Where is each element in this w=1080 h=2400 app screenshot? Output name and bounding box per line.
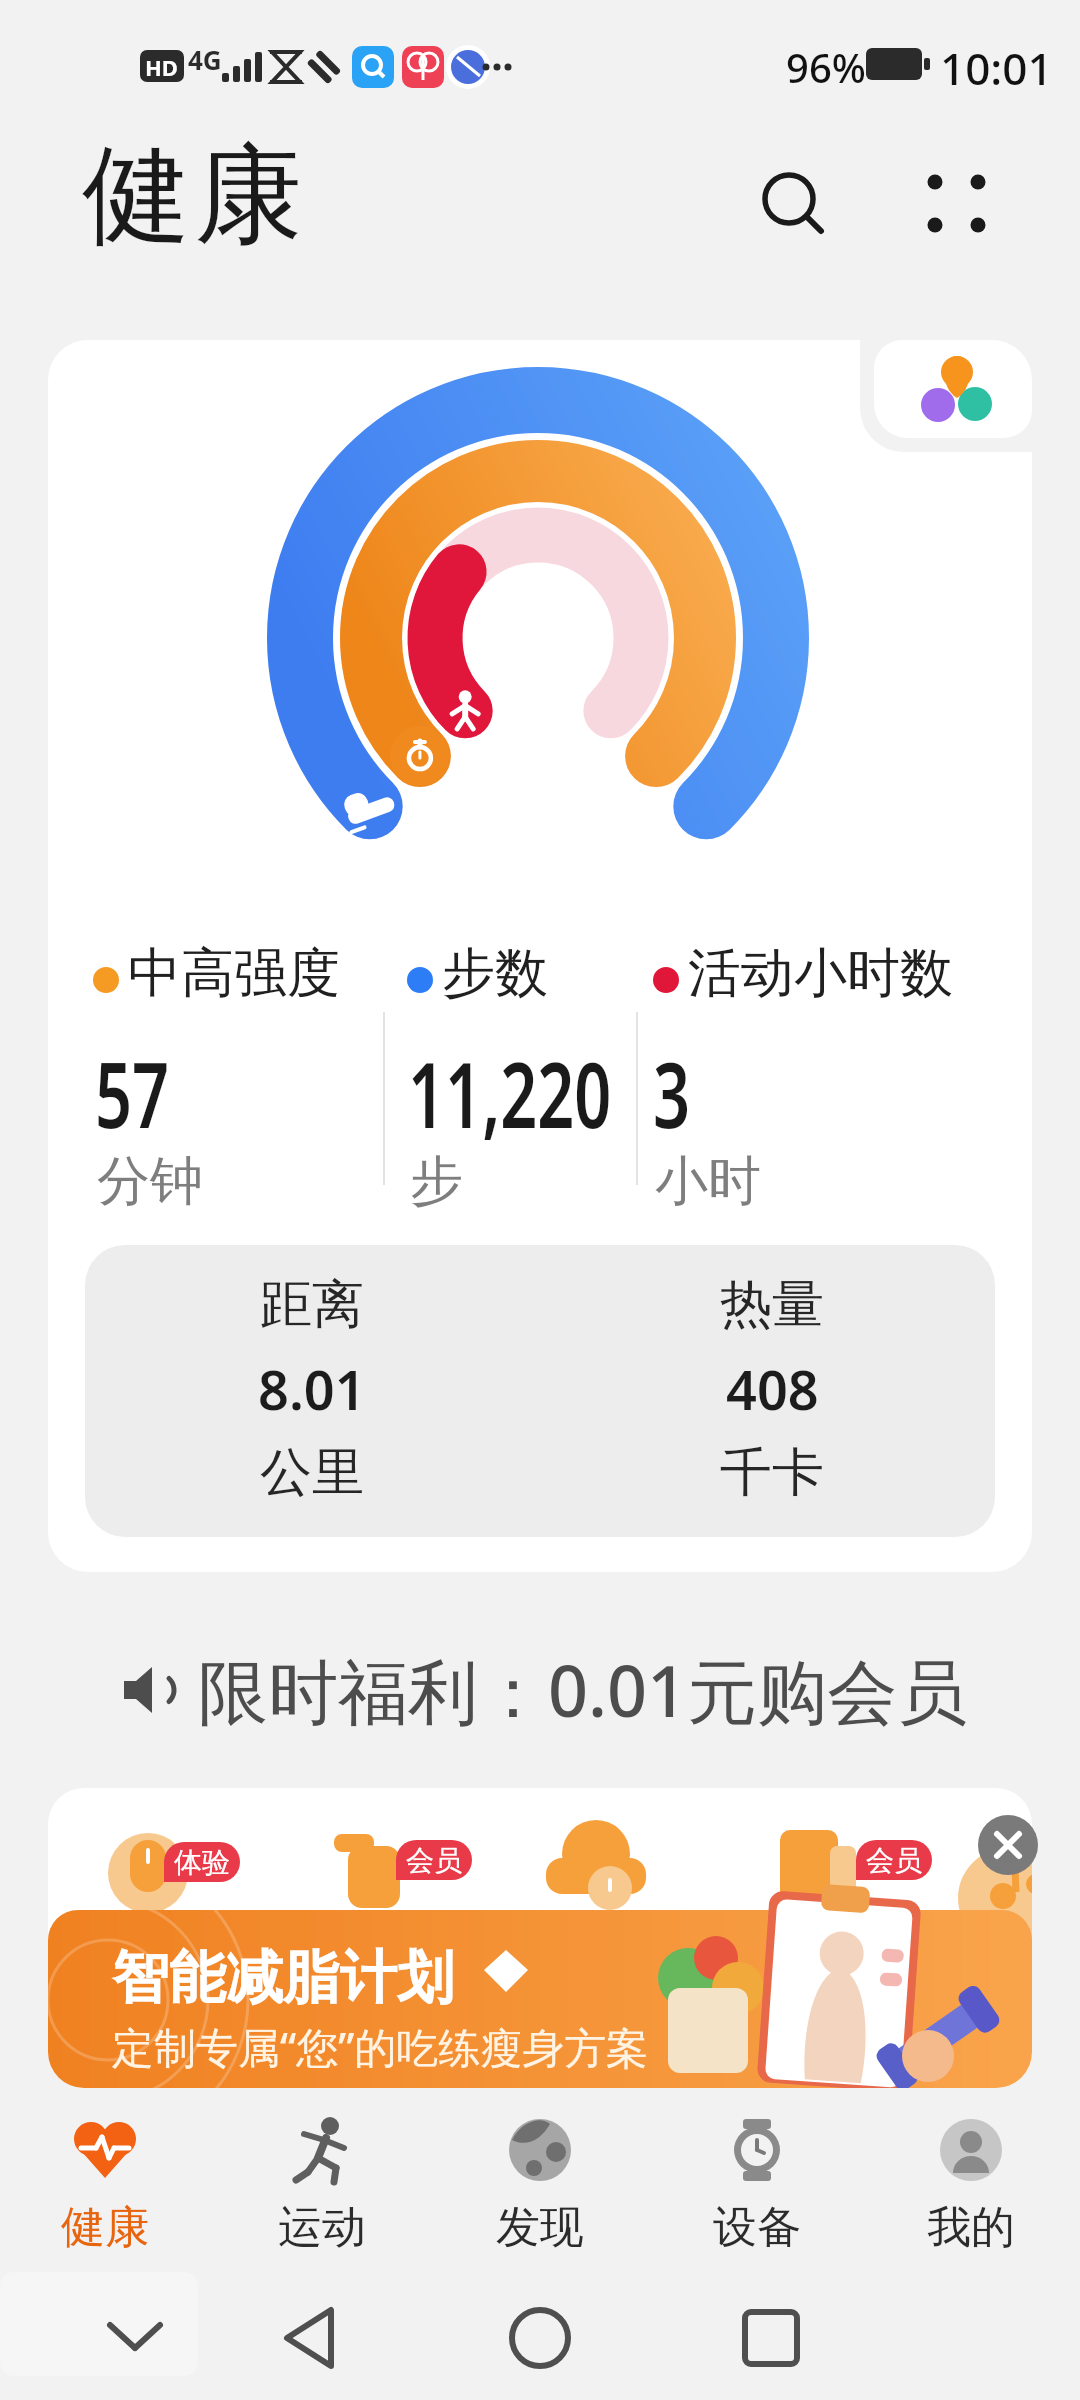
staticText: 体验 (174, 1845, 230, 1880)
staticText: 步 (410, 1148, 463, 1215)
staticText: 96% (786, 40, 866, 94)
staticText: 10:01 (940, 38, 1053, 98)
staticText: 步数 (442, 940, 548, 1007)
staticText: 热量 (720, 1272, 824, 1338)
button[interactable]: 限时福利：0.01元购会员 (110, 1630, 968, 1750)
staticText: 会员 (406, 1843, 462, 1878)
staticText: 小时 (655, 1148, 761, 1215)
staticText: 活动小时数 (688, 940, 953, 1007)
staticText: 57 (95, 1032, 169, 1155)
staticText: 408 (726, 1352, 819, 1426)
staticText: 11,220 (408, 1032, 612, 1155)
staticText: 公里 (260, 1440, 364, 1506)
staticText: 中高强度 (128, 940, 340, 1007)
staticText: 距离 (260, 1272, 364, 1338)
button[interactable] (755, 165, 831, 241)
staticText: 发现 (496, 2200, 584, 2255)
staticText: 我的 (927, 2200, 1015, 2255)
button[interactable] (978, 1815, 1038, 1875)
staticText: 4G (188, 42, 222, 77)
button[interactable]: 体验 (48, 1788, 1032, 2088)
button[interactable] (874, 340, 1032, 438)
button[interactable] (915, 160, 1001, 246)
staticText: 会员 (866, 1843, 922, 1878)
button[interactable]: 我的 (891, 2118, 1051, 2255)
staticText: 3 (653, 1032, 690, 1155)
staticText: 设备 (713, 2200, 801, 2255)
staticText: 分钟 (97, 1148, 203, 1215)
staticText: 健康 (82, 128, 307, 264)
staticText: 千卡 (720, 1440, 824, 1506)
button[interactable]: 健康 (25, 2118, 185, 2255)
button[interactable]: 发现 (460, 2118, 620, 2255)
staticText: 8.01 (258, 1352, 366, 1426)
button[interactable]: 运动 (242, 2118, 402, 2255)
button[interactable]: 设备 (677, 2118, 837, 2255)
staticText: 定制专属“您”的吃练瘦身方案 (112, 2018, 649, 2075)
staticText: 健康 (61, 2200, 149, 2255)
staticText: 运动 (278, 2200, 366, 2255)
staticText: 限时福利：0.01元购会员 (198, 1642, 968, 1738)
staticText: HD (145, 52, 178, 82)
staticText: 智能减脂计划 (112, 1942, 454, 2014)
